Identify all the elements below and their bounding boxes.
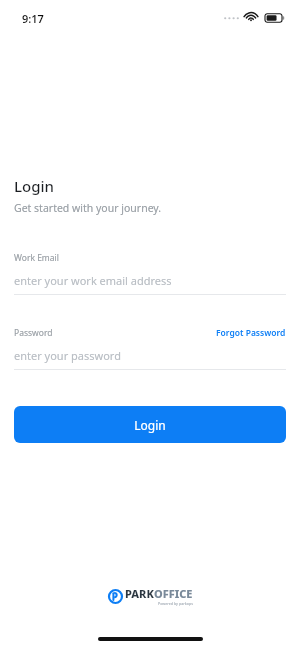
staticText: Password <box>14 327 53 339</box>
staticText: enter your work email address <box>14 273 172 288</box>
button[interactable]: Work Email <box>14 252 286 295</box>
staticText: OFFICE <box>154 586 193 601</box>
staticText: PARK <box>125 586 154 601</box>
staticText: Powered by parkops <box>158 601 193 606</box>
button[interactable]: Forgot Password <box>216 327 286 339</box>
staticText: 9:17 <box>22 11 44 26</box>
staticText: Login <box>134 417 166 433</box>
staticText: Forgot Password <box>216 327 286 339</box>
staticText: Get started with your journey. <box>14 201 162 215</box>
staticText: enter your password <box>14 348 121 363</box>
staticText: Work Email <box>14 252 59 264</box>
button[interactable]: Login <box>14 406 286 443</box>
button[interactable]: enter your password <box>14 348 286 363</box>
staticText: Login <box>14 176 54 196</box>
